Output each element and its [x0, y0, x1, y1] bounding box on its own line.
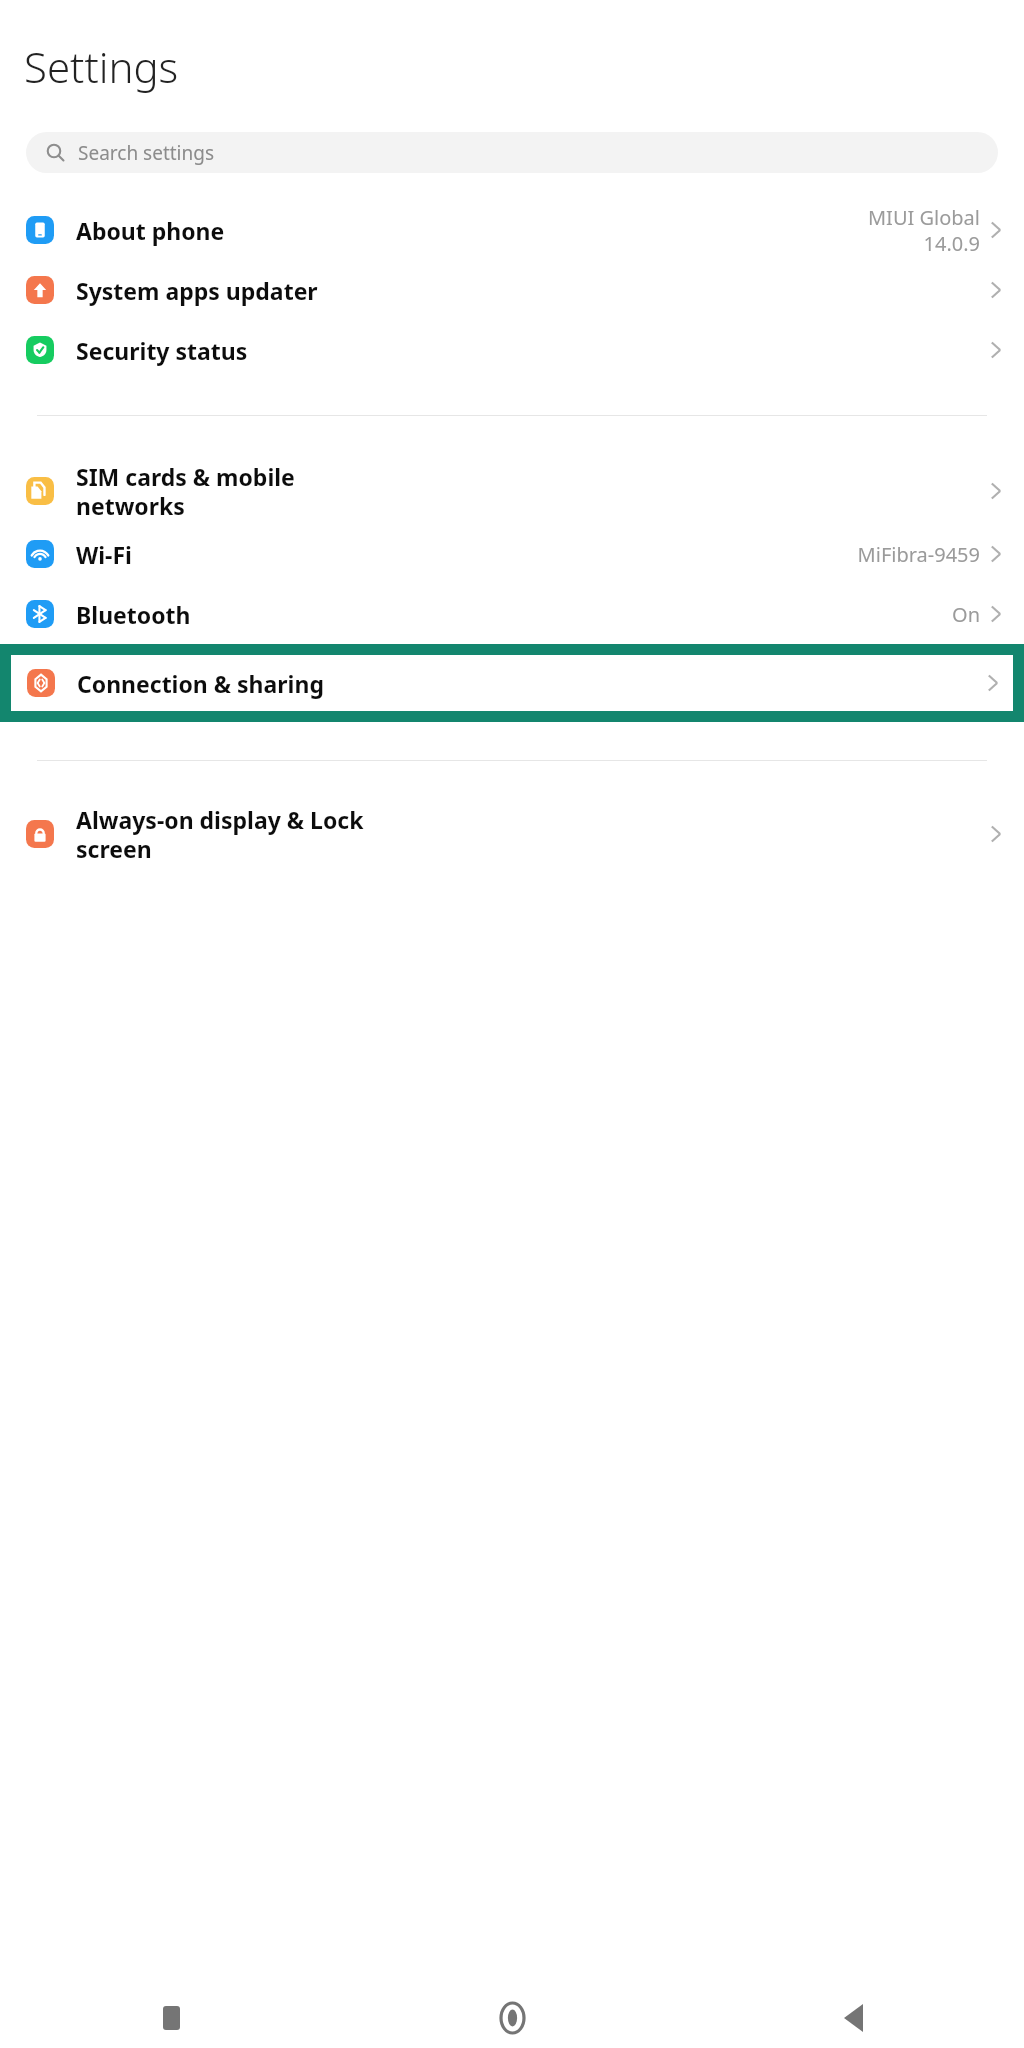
staticText: Search settings — [78, 140, 215, 166]
staticText: Settings — [24, 38, 179, 95]
button[interactable]: Connection & sharing — [11, 655, 1013, 711]
button[interactable]: Always-on display & Lock screen — [0, 801, 1024, 867]
button[interactable]: Search settings — [26, 132, 998, 173]
staticText: Always-on display & Lock screen — [76, 804, 990, 865]
staticText: MiFibra-9459 — [857, 541, 980, 568]
button[interactable]: Wi-Fi — [0, 524, 1024, 584]
button[interactable]: Bluetooth — [0, 584, 1024, 644]
button[interactable]: About phone — [0, 200, 1024, 260]
staticText: MIUI Global 14.0.9 — [867, 204, 980, 257]
button[interactable]: Security status — [0, 320, 1024, 380]
staticText: Connection & sharing — [77, 668, 987, 699]
staticText: About phone — [76, 215, 867, 246]
button[interactable]: System apps updater — [0, 260, 1024, 320]
staticText: Security status — [76, 335, 990, 366]
button[interactable]: Recents — [0, 1988, 342, 2048]
staticText: System apps updater — [76, 275, 990, 306]
staticText: Wi-Fi — [76, 539, 857, 570]
button[interactable]: Home — [342, 1988, 683, 2048]
staticText: On — [952, 601, 980, 628]
button[interactable]: Back — [683, 1988, 1024, 2048]
staticText: Bluetooth — [76, 599, 952, 630]
staticText: SIM cards & mobile networks — [76, 461, 990, 522]
button[interactable]: SIM cards & mobile networks — [0, 458, 1024, 524]
